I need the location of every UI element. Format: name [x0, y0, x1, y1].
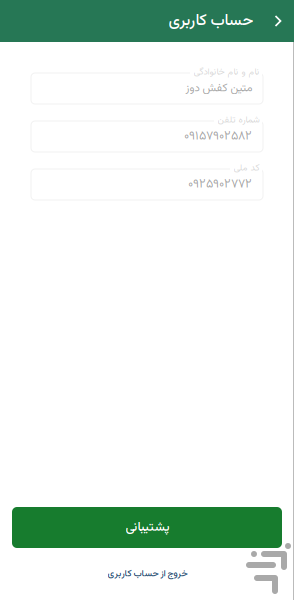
staticText: شماره تلفن — [217, 113, 259, 128]
button[interactable]: خروج از حساب کاربری — [0, 559, 294, 589]
staticText: ۰۹۱۵۷۹۰۲۵۸۲ — [184, 127, 252, 146]
button[interactable]: Back — [262, 4, 294, 38]
staticText: ۰۹۲۵۹۰۲۷۷۲ — [188, 175, 252, 194]
staticText: خروج از حساب کاربری — [107, 567, 187, 581]
button[interactable]: پشتیبانی — [12, 507, 282, 548]
staticText: حساب کاربری — [168, 8, 253, 33]
staticText: کد ملی — [233, 161, 259, 176]
staticText: نام و نام خانوادگی — [193, 65, 259, 80]
staticText: متین کفش دوز — [185, 80, 252, 97]
staticText: پشتیبانی — [125, 517, 169, 537]
